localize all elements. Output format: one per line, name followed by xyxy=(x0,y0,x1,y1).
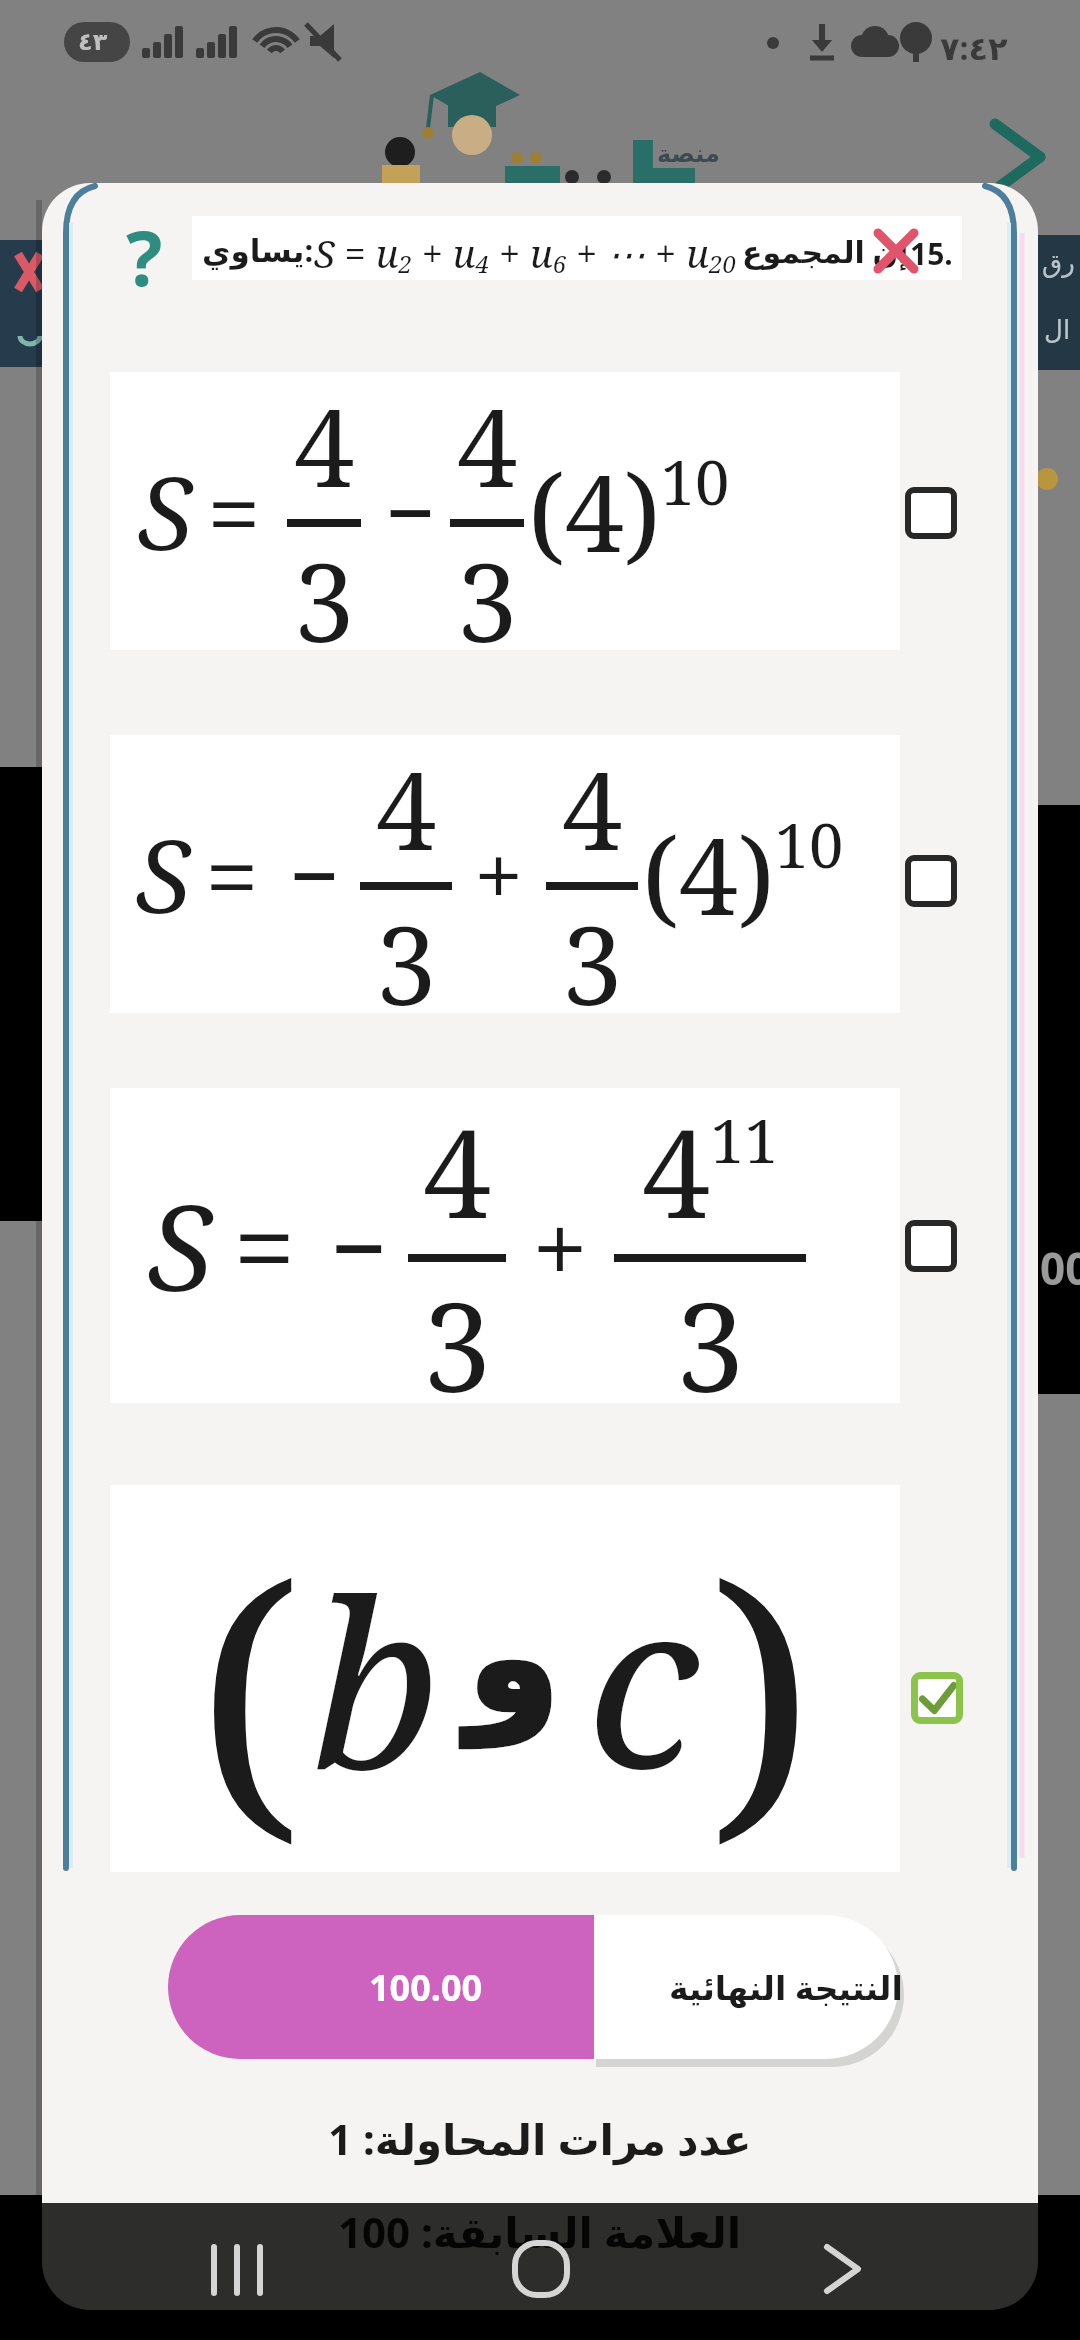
button[interactable] xyxy=(905,855,957,907)
button[interactable] xyxy=(905,487,957,539)
staticText: 15. xyxy=(910,233,953,274)
staticText: S xyxy=(148,1165,213,1326)
staticText: 3 xyxy=(562,890,623,1013)
staticText: 100.00 xyxy=(369,1963,483,2012)
staticText: 411 xyxy=(642,1088,779,1254)
staticText: c xyxy=(587,1522,700,1835)
staticText: S xyxy=(138,443,193,579)
staticText: = xyxy=(207,446,261,577)
staticText: 3 xyxy=(376,890,437,1013)
button[interactable]: النتيجة النهائية xyxy=(594,1915,898,2059)
staticText: 4 xyxy=(457,372,518,519)
staticText: 4 xyxy=(376,735,437,882)
staticText: − xyxy=(330,1178,388,1314)
staticText: (4)10 xyxy=(642,802,844,946)
staticText: S = u2 + u4 + u6 + ⋯ + u20 xyxy=(314,227,736,280)
staticText: (4)10 xyxy=(528,439,730,583)
button[interactable]: S xyxy=(110,1088,900,1403)
staticText: 3 xyxy=(676,1262,745,1403)
staticText: النتيجة النهائية xyxy=(669,1965,903,2010)
staticText: + xyxy=(474,814,524,934)
staticText: 00. xyxy=(1040,1238,1080,1298)
staticText: ال xyxy=(1044,315,1071,345)
staticText: ٧:٤٢ xyxy=(940,26,1008,70)
staticText: ( xyxy=(197,1485,301,1872)
staticText: يساوي: xyxy=(202,229,314,271)
button[interactable]: ( xyxy=(110,1485,900,1872)
staticText: + xyxy=(532,1178,588,1314)
staticText: − xyxy=(385,451,436,571)
staticText: 4 xyxy=(423,1088,492,1254)
staticText: 4 xyxy=(562,735,623,882)
staticText: ٤٣ xyxy=(78,28,108,56)
staticText: 3 xyxy=(294,527,355,650)
button[interactable]: S xyxy=(110,735,900,1013)
staticText: − xyxy=(289,814,340,934)
staticText: 3 xyxy=(423,1262,492,1403)
staticText: ? xyxy=(126,205,163,309)
staticText: العلامة السابقة: 100 xyxy=(338,2203,742,2260)
button[interactable]: 100.00 xyxy=(168,1915,594,2059)
staticText: ) xyxy=(710,1485,814,1872)
staticText: عدد مرات المحاولة: 1 xyxy=(328,2110,752,2167)
staticText: 3 xyxy=(457,527,518,650)
staticText: رق xyxy=(1042,248,1075,278)
staticText: b xyxy=(311,1522,441,1835)
staticText: منصة xyxy=(657,140,720,168)
staticText: = xyxy=(233,1169,296,1322)
button[interactable] xyxy=(905,1220,957,1272)
staticText: = xyxy=(205,809,259,940)
staticText: إن المجموع xyxy=(742,231,909,272)
button[interactable]: S xyxy=(110,372,900,650)
button[interactable] xyxy=(911,1672,963,1724)
staticText: S xyxy=(136,806,191,942)
staticText: و xyxy=(467,1571,561,1746)
button[interactable] xyxy=(192,216,962,280)
staticText: 4 xyxy=(294,372,355,519)
